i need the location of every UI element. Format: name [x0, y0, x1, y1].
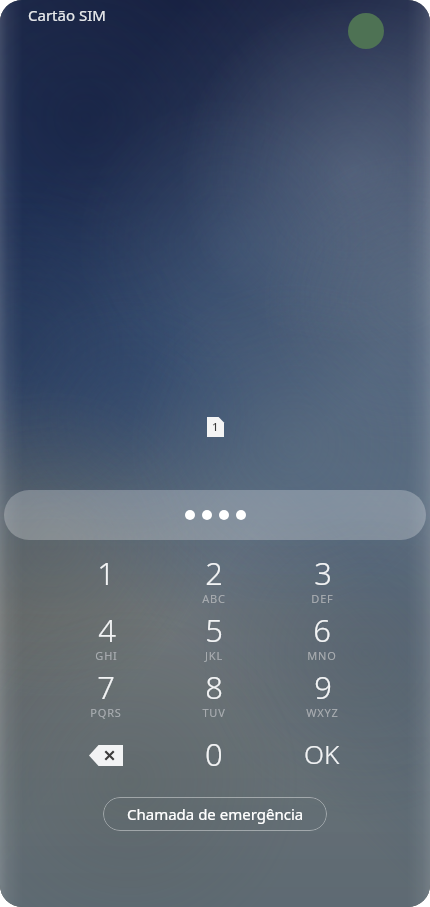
staticText: ABC — [202, 591, 226, 606]
button[interactable]: 3 — [268, 552, 376, 609]
staticText: JKL — [205, 648, 223, 663]
staticText: 9 — [314, 666, 332, 708]
staticText: Cartão SIM — [28, 5, 106, 25]
staticText: DEF — [311, 591, 334, 606]
staticText: 3 — [314, 552, 332, 594]
staticText: 6 — [313, 609, 331, 651]
staticText: WXYZ — [306, 705, 339, 720]
button[interactable]: 5 — [160, 609, 268, 666]
button[interactable]: 2 — [160, 552, 268, 609]
staticText: 0 — [205, 733, 223, 775]
button[interactable]: 8 — [160, 666, 268, 723]
button[interactable]: 1 — [52, 552, 160, 609]
staticText: Chamada de emergência — [127, 804, 304, 824]
staticText: 2 — [205, 552, 223, 594]
staticText: GHI — [95, 648, 118, 663]
staticText: 5 — [205, 609, 223, 651]
staticText: PQRS — [90, 705, 122, 720]
staticText: TUV — [202, 705, 226, 720]
button[interactable]: Chamada de emergência — [103, 797, 327, 831]
button[interactable] — [4, 490, 426, 540]
staticText: OK — [304, 736, 340, 771]
staticText: 4 — [98, 609, 116, 651]
staticText: MNO — [307, 648, 337, 663]
staticText: 7 — [97, 666, 115, 708]
staticText: 1 — [212, 419, 219, 434]
button[interactable]: OK — [268, 727, 376, 784]
staticText: 1 — [97, 552, 115, 594]
button[interactable]: 0 — [160, 727, 268, 784]
button[interactable]: 4 — [52, 609, 160, 666]
staticText: 8 — [205, 666, 223, 708]
button[interactable]: 7 — [52, 666, 160, 723]
button[interactable]: Backspace — [52, 727, 160, 784]
button[interactable]: 6 — [268, 609, 376, 666]
button[interactable]: 9 — [268, 666, 376, 723]
